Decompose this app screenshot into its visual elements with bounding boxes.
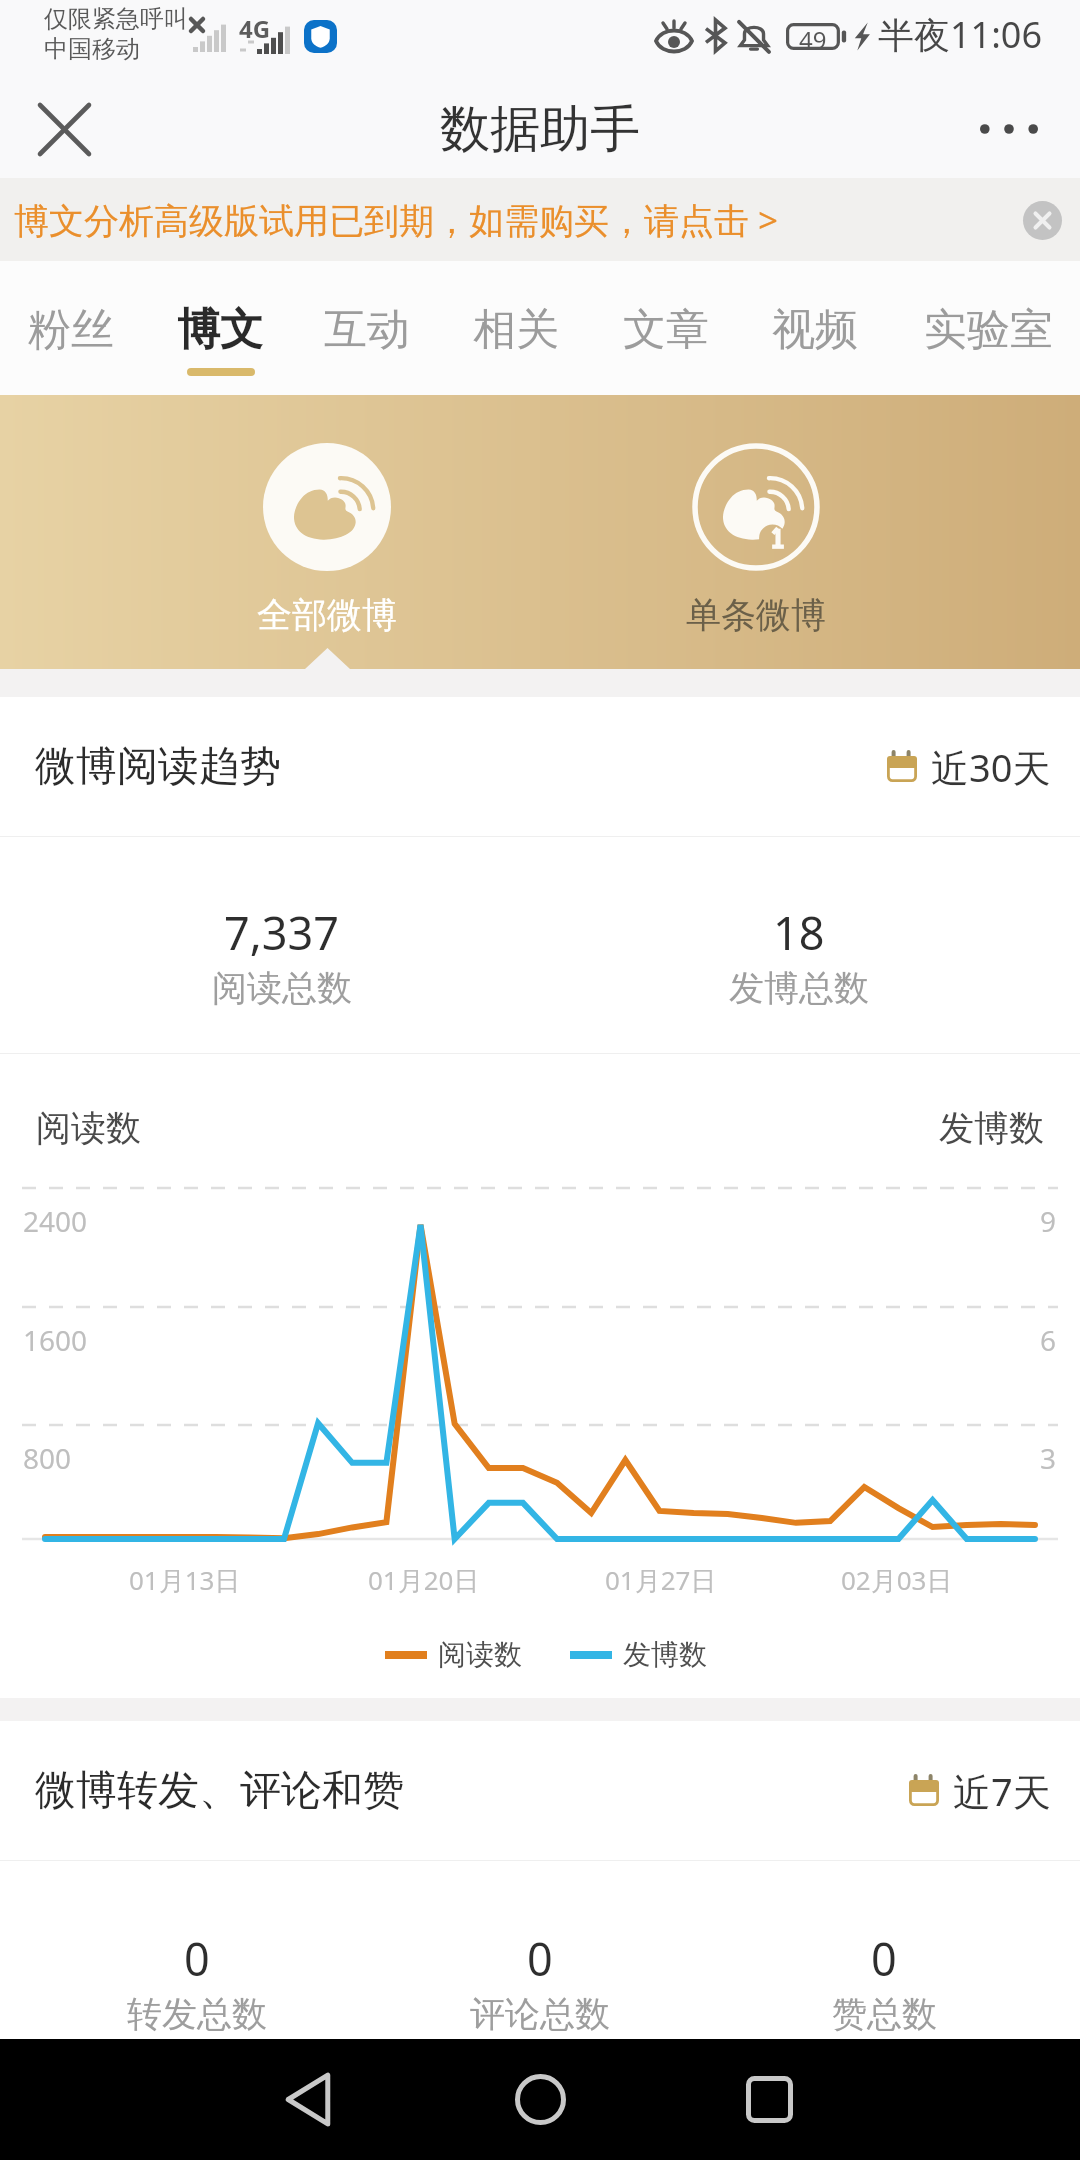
staticText: 互动 (324, 303, 410, 357)
staticText: 单条微博 (686, 593, 826, 637)
staticText: 转发总数 (127, 1992, 267, 2036)
staticText: 全部微博 (257, 593, 397, 637)
staticText: 3 (1040, 1439, 1057, 1477)
button[interactable]: Close (0, 80, 128, 178)
staticText: 文章 (623, 303, 709, 357)
staticText: 半夜11:06 (878, 10, 1043, 59)
staticText: 49 (799, 23, 827, 50)
button[interactable]: 近7天 (909, 1765, 1051, 1817)
staticText: 实验室 (924, 303, 1053, 357)
button[interactable]: 互动 (312, 261, 422, 395)
button[interactable]: 实验室 (913, 261, 1063, 395)
staticText: 0 (527, 1928, 553, 1989)
staticText: 视频 (772, 303, 858, 357)
button[interactable]: Home (480, 2039, 600, 2160)
staticText: 01月20日 (368, 1562, 480, 1598)
staticText: 800 (23, 1439, 72, 1477)
button[interactable]: 博文分析高级版试用已到期，如需购买，请点击 > (0, 178, 1080, 261)
button[interactable]: Recent apps (709, 2039, 829, 2160)
staticText: 0 (184, 1928, 210, 1989)
staticText: 6 (1040, 1321, 1057, 1359)
button[interactable]: 近30天 (887, 741, 1051, 793)
button[interactable]: Dismiss banner (1012, 190, 1072, 250)
button[interactable]: More options (938, 80, 1080, 178)
staticText: 近7天 (953, 1765, 1051, 1817)
button[interactable]: 文章 (611, 261, 721, 395)
button[interactable]: 视频 (760, 261, 870, 395)
staticText: 7,337 (224, 902, 340, 963)
button[interactable]: 单条微博 (646, 425, 866, 650)
button[interactable]: 相关 (461, 261, 571, 395)
staticText: 微博转发、评论和赞 (35, 1765, 404, 1817)
staticText: 发博数 (939, 1106, 1044, 1150)
staticText: 数据助手 (440, 98, 640, 161)
staticText: 18 (773, 902, 825, 963)
staticText: 近30天 (931, 741, 1051, 793)
staticText: 01月13日 (129, 1562, 241, 1598)
staticText: 发博数 (623, 1637, 707, 1672)
staticText: 仅限紧急呼叫 (44, 4, 188, 34)
staticText: 2400 (23, 1202, 88, 1240)
staticText: 01月27日 (605, 1562, 717, 1598)
staticText: 赞总数 (832, 1992, 937, 2036)
staticText: 微博阅读趋势 (35, 741, 281, 793)
staticText: 博文分析高级版试用已到期，如需购买，请点击 > (14, 196, 779, 244)
staticText: 评论总数 (470, 1992, 610, 2036)
staticText: 中国移动 (44, 34, 140, 64)
staticText: 9 (1040, 1202, 1057, 1240)
staticText: 02月03日 (841, 1562, 953, 1598)
staticText: 相关 (473, 303, 559, 357)
button[interactable]: 全部微博 (217, 425, 437, 650)
staticText: 0 (871, 1928, 897, 1989)
staticText: 博文 (177, 303, 263, 357)
button[interactable]: 博文 (165, 261, 275, 395)
button[interactable]: 粉丝 (16, 261, 126, 395)
staticText: 阅读数 (36, 1106, 141, 1150)
staticText: 发博总数 (729, 966, 869, 1010)
staticText: 阅读数 (438, 1637, 522, 1672)
staticText: 阅读总数 (212, 966, 352, 1010)
button[interactable]: Back (248, 2039, 368, 2160)
staticText: 粉丝 (28, 303, 114, 357)
staticText: 4G (239, 12, 271, 45)
staticText: 1600 (23, 1321, 88, 1359)
